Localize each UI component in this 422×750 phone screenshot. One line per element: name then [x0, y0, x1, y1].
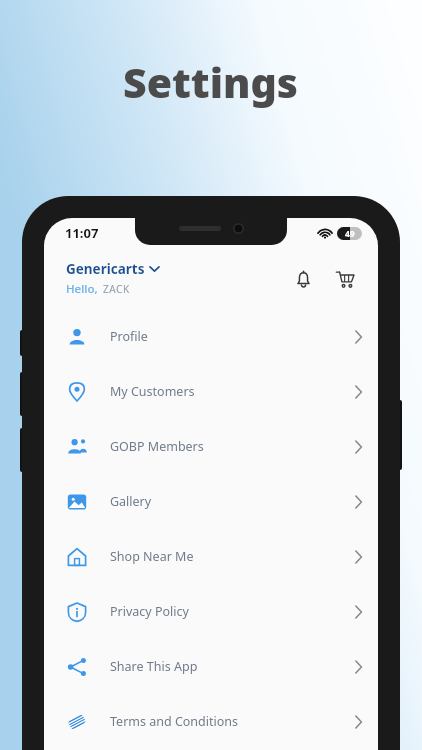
button[interactable]: Share This App — [44, 639, 378, 694]
button[interactable]: Privacy Policy — [44, 584, 378, 639]
staticText: Terms and Conditions — [110, 713, 239, 730]
staticText: Genericarts — [66, 260, 145, 278]
button[interactable]: Terms and Conditions — [44, 694, 378, 749]
button[interactable]: Gallery — [44, 474, 378, 529]
staticText: Privacy Policy — [110, 603, 189, 620]
staticText: Gallery — [110, 493, 152, 510]
staticText: My Customers — [110, 383, 195, 400]
button[interactable]: Shop Near Me — [44, 529, 378, 584]
button[interactable]: Notifications — [286, 262, 320, 296]
button[interactable]: Genericarts — [66, 260, 286, 297]
staticText: 11:07 — [65, 224, 99, 242]
button[interactable]: My Customers — [44, 364, 378, 419]
button[interactable]: Cart — [328, 262, 362, 296]
button[interactable]: GOBP Members — [44, 419, 378, 474]
staticText: Shop Near Me — [110, 548, 194, 565]
staticText: Hello, — [66, 281, 98, 297]
button[interactable]: Profile — [44, 309, 378, 364]
staticText: 49 — [345, 228, 355, 240]
staticText: Profile — [110, 328, 148, 345]
staticText: GOBP Members — [110, 438, 204, 455]
staticText: Settings — [123, 54, 299, 110]
staticText: Share This App — [110, 658, 198, 675]
staticText: ZACK — [103, 282, 130, 296]
